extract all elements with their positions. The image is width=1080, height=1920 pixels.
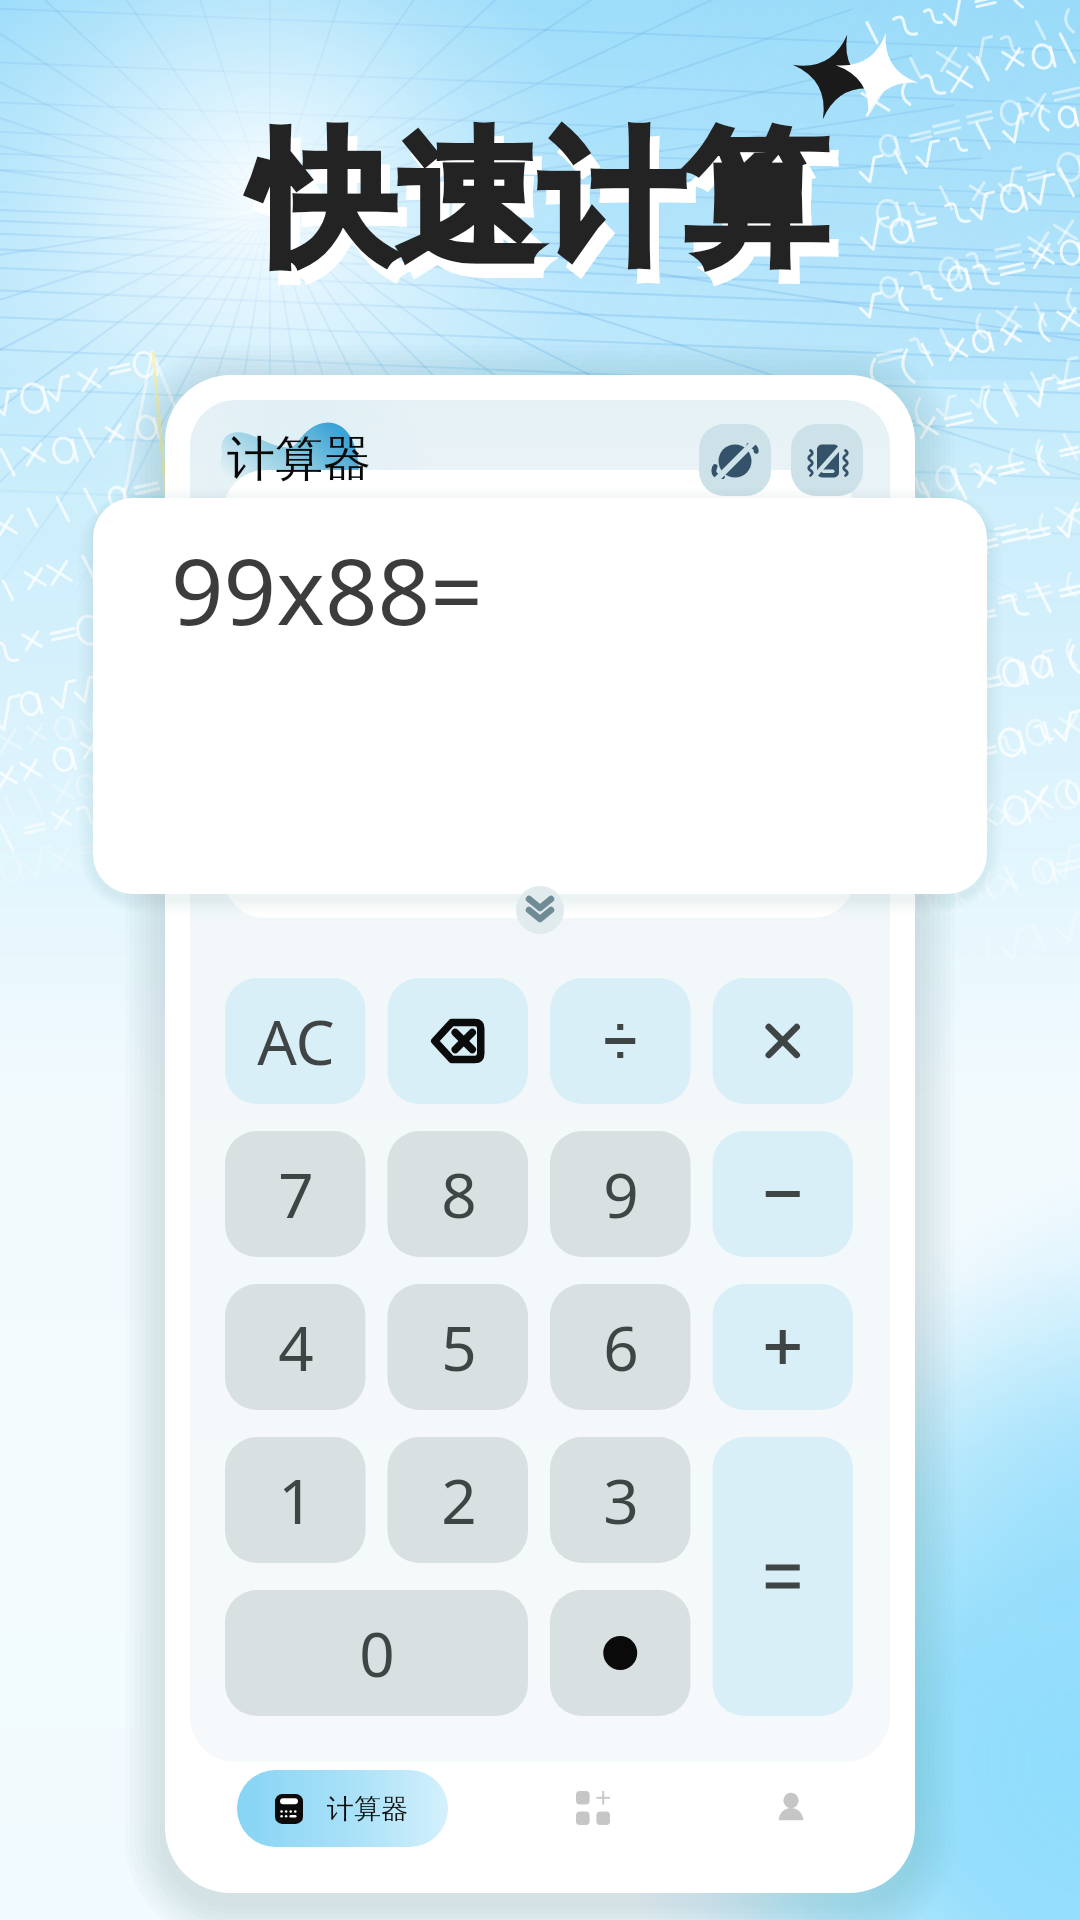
- staticText: 0: [359, 1611, 395, 1695]
- button[interactable]: 2: [388, 1437, 529, 1563]
- button[interactable]: 计算器: [237, 1770, 448, 1847]
- button[interactable]: 0: [225, 1590, 528, 1716]
- button[interactable]: 7: [225, 1131, 366, 1257]
- staticText: 9: [603, 1152, 639, 1236]
- staticText: 6: [603, 1305, 639, 1389]
- button[interactable]: 9: [550, 1131, 691, 1257]
- button[interactable]: 5: [388, 1284, 529, 1410]
- button[interactable]: Collapse: [516, 886, 564, 934]
- staticText: 5: [441, 1305, 477, 1389]
- button[interactable]: 8: [388, 1131, 529, 1257]
- staticText: AC: [257, 999, 335, 1083]
- staticText: 2: [441, 1458, 477, 1542]
- staticText: 4: [278, 1305, 314, 1389]
- button[interactable]: Mute sound: [699, 424, 771, 496]
- button[interactable]: Add widget: [553, 1768, 633, 1848]
- staticText: 快速计算: [260, 124, 836, 305]
- button[interactable]: 6: [550, 1284, 691, 1410]
- staticText: 99x88=: [171, 527, 483, 652]
- button[interactable]: 99x88=: [93, 498, 987, 894]
- staticText: 1: [278, 1458, 314, 1542]
- button[interactable]: Vibration off: [791, 424, 863, 496]
- button[interactable]: Profile: [751, 1768, 831, 1848]
- staticText: 3: [603, 1458, 639, 1542]
- button[interactable]: AC: [225, 978, 366, 1104]
- button[interactable]: 1: [225, 1437, 366, 1563]
- button[interactable]: 3: [550, 1437, 691, 1563]
- staticText: 7: [278, 1152, 314, 1236]
- button[interactable]: 4: [225, 1284, 366, 1410]
- staticText: 快速计算: [251, 110, 827, 291]
- staticText: 8: [441, 1152, 477, 1236]
- staticText: 计算器: [327, 1792, 408, 1826]
- staticText: 计算器: [227, 429, 371, 489]
